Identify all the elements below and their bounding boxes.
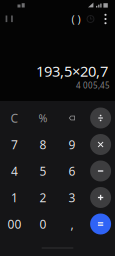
staticText: 0 xyxy=(40,216,47,232)
button[interactable]: History xyxy=(81,10,99,28)
button[interactable]: More options xyxy=(98,10,112,28)
button[interactable]: Equals xyxy=(87,211,115,237)
button[interactable]: Multiply xyxy=(87,131,115,157)
staticText: C xyxy=(10,110,18,126)
button[interactable]: Subtract xyxy=(87,158,115,184)
staticText: 8 xyxy=(40,136,47,152)
button[interactable]: , xyxy=(58,211,86,237)
staticText: % xyxy=(39,111,48,125)
staticText: 00 xyxy=(7,216,21,232)
button[interactable]: 6 xyxy=(58,158,86,184)
button[interactable]: % xyxy=(29,105,57,131)
staticText: 4 005,45 xyxy=(76,80,110,91)
staticText: 4 xyxy=(11,163,18,179)
staticText: 1 xyxy=(11,189,18,205)
button[interactable]: 2 xyxy=(29,184,57,210)
button[interactable]: 9 xyxy=(58,131,86,157)
button[interactable]: 7 xyxy=(0,131,28,157)
staticText: 193,5×20,7 xyxy=(36,61,108,81)
button[interactable]: Parentheses xyxy=(67,10,85,28)
button[interactable]: Divide xyxy=(87,105,115,131)
staticText: 2 xyxy=(40,189,47,205)
button[interactable]: C xyxy=(0,105,28,131)
button[interactable]: 3 xyxy=(58,184,86,210)
button[interactable]: 00 xyxy=(0,211,28,237)
button[interactable]: 8 xyxy=(29,131,57,157)
button[interactable]: Backspace xyxy=(58,105,86,131)
staticText: 9 xyxy=(68,136,75,152)
staticText: , xyxy=(70,216,73,232)
button[interactable]: Unit converter xyxy=(0,10,18,28)
staticText: 5 xyxy=(40,163,47,179)
button[interactable]: 1 xyxy=(0,184,28,210)
button[interactable]: 5 xyxy=(29,158,57,184)
button[interactable]: Add xyxy=(87,184,115,210)
button[interactable]: 4 xyxy=(0,158,28,184)
staticText: 7 xyxy=(11,136,18,152)
staticText: 6 xyxy=(68,163,75,179)
staticText: 3 xyxy=(68,189,75,205)
staticText: ( ) xyxy=(71,12,80,26)
button[interactable]: 0 xyxy=(29,211,57,237)
